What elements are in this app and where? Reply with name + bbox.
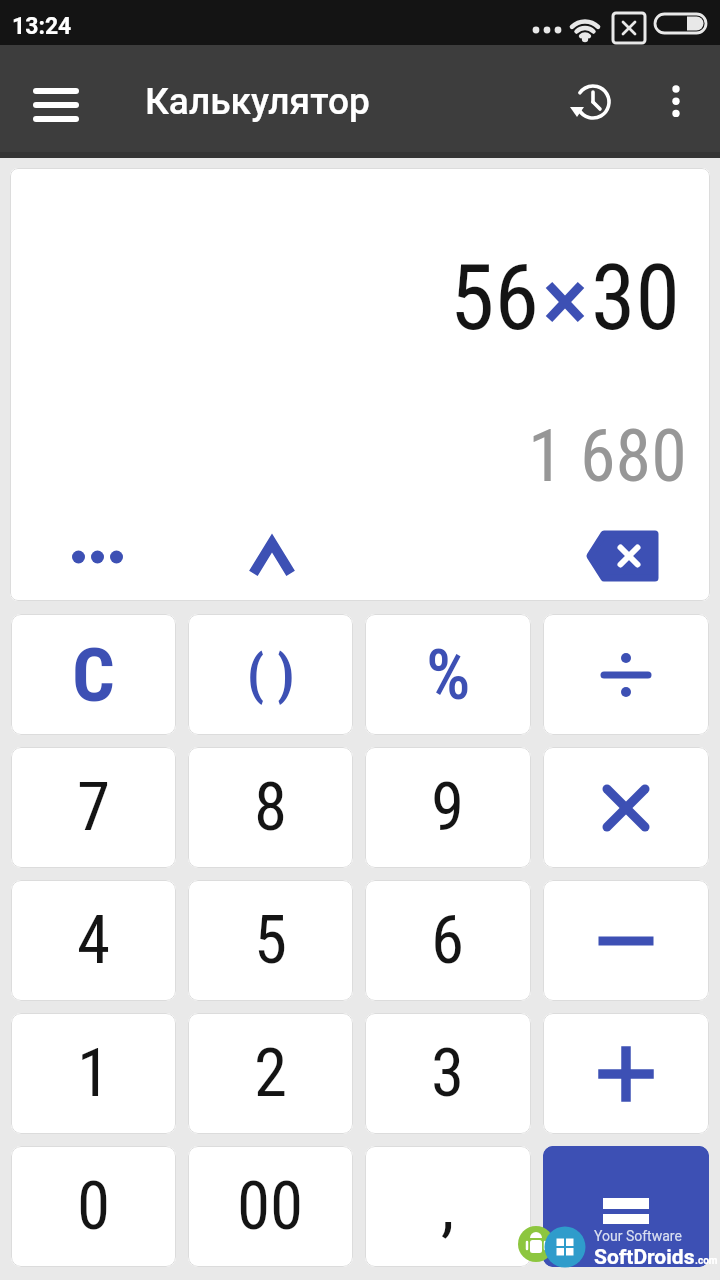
button[interactable]: 1 [11,1013,176,1134]
button[interactable] [560,70,624,134]
staticText: 9 [431,768,465,847]
button[interactable]: 2 [188,1013,353,1134]
staticText: 56 [450,246,539,351]
staticText: 0 [77,1167,111,1246]
button[interactable]: ( ) [188,614,353,735]
staticText: C [72,631,115,719]
button[interactable] [241,525,303,587]
button[interactable]: 4 [11,880,176,1001]
button[interactable]: 00 [188,1146,353,1267]
button[interactable] [543,1013,709,1134]
button[interactable] [543,614,709,735]
button[interactable] [543,880,709,1001]
staticText: 1 680 [528,414,687,498]
staticText: 6 [431,901,465,980]
staticText: , [441,1167,455,1246]
button[interactable]: C [11,614,176,735]
staticText: Калькулятор [145,80,370,123]
button[interactable]: 7 [11,747,176,868]
button[interactable]: 3 [365,1013,531,1134]
button[interactable]: % [365,614,531,735]
button[interactable] [68,528,126,586]
button[interactable]: 8 [188,747,353,868]
button[interactable]: 9 [365,747,531,868]
button[interactable] [20,66,92,138]
staticText: 00 [237,1167,304,1246]
staticText: 8 [254,768,288,847]
staticText: SoftDroids [594,1245,695,1270]
staticText: 5 [254,901,288,980]
staticText: 7 [77,768,111,847]
staticText: % [426,634,471,716]
staticText: Your Software [594,1228,682,1244]
staticText: .com [695,1255,718,1267]
button[interactable]: , [365,1146,531,1267]
button[interactable]: 5 [188,880,353,1001]
button[interactable] [573,521,677,591]
button[interactable]: 6 [365,880,531,1001]
button[interactable] [543,747,709,868]
staticText: 3 [431,1034,465,1113]
staticText: 4 [77,901,111,980]
button[interactable] [543,1146,709,1267]
staticText: 2 [254,1034,288,1113]
staticText: ( ) [247,643,295,706]
button[interactable] [650,76,702,128]
staticText: 1 [77,1034,111,1113]
staticText: 13:24 [12,13,72,40]
staticText: 30 [591,246,680,351]
button[interactable]: 0 [11,1146,176,1267]
